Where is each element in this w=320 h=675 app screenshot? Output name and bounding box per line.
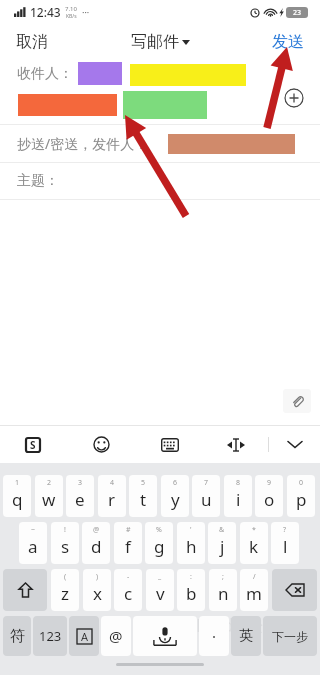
staticText: 发送 xyxy=(272,32,304,52)
button[interactable]: 7 xyxy=(192,475,220,517)
staticText: a xyxy=(28,535,38,558)
staticText: ··· xyxy=(82,6,90,18)
staticText: ! xyxy=(64,525,66,535)
staticText: z xyxy=(61,582,69,605)
staticText: v xyxy=(156,582,165,605)
button[interactable]: 添加联系人 xyxy=(284,88,304,108)
staticText: ~ xyxy=(31,525,36,535)
button[interactable]: 发送 xyxy=(262,28,314,56)
staticText: 8 xyxy=(236,478,241,488)
staticText: g xyxy=(154,535,165,558)
staticText: ) xyxy=(96,572,99,582)
staticText: c xyxy=(124,582,133,605)
button[interactable]: @ xyxy=(101,616,131,656)
staticText: · xyxy=(212,626,217,646)
staticText: ? xyxy=(283,525,287,535)
staticText: 英 xyxy=(239,627,253,645)
staticText: w xyxy=(42,488,56,511)
button[interactable]: 123 xyxy=(33,616,67,656)
button[interactable]: ' xyxy=(177,522,205,564)
staticText: 抄送/密送，发件人： xyxy=(17,134,149,153)
button[interactable]: : xyxy=(177,569,205,611)
button[interactable]: 符 xyxy=(3,616,31,656)
button[interactable]: # xyxy=(114,522,142,564)
staticText: 9 xyxy=(267,478,272,488)
button[interactable]: & xyxy=(208,522,236,564)
button[interactable]: 收件人： xyxy=(0,58,320,124)
button[interactable]: 空格 语音输入 xyxy=(133,616,197,656)
staticText: q xyxy=(12,488,23,511)
button[interactable]: 主题： xyxy=(0,163,320,199)
button[interactable]: ; xyxy=(209,569,237,611)
staticText: & xyxy=(219,525,225,535)
button[interactable]: 添加附件 xyxy=(283,389,311,413)
button[interactable]: - xyxy=(114,569,142,611)
button[interactable]: ) xyxy=(83,569,111,611)
button[interactable]: % xyxy=(145,522,173,564)
staticText: / xyxy=(253,572,256,582)
button[interactable]: 2 xyxy=(35,475,63,517)
staticText: r xyxy=(108,488,116,511)
staticText: m xyxy=(246,582,262,605)
button[interactable]: 抄送/密送，发件人： xyxy=(0,125,320,162)
staticText: e xyxy=(75,488,85,511)
button[interactable]: 收起键盘 xyxy=(282,433,308,456)
button[interactable]: 光标移动 xyxy=(223,433,249,456)
staticText: y xyxy=(171,488,180,511)
staticText: _ xyxy=(158,572,162,582)
staticText: 3 xyxy=(78,478,83,488)
staticText: KB/s xyxy=(66,13,77,20)
staticText: ' xyxy=(190,525,192,535)
button[interactable]: 8 xyxy=(224,475,252,517)
button[interactable]: 9 xyxy=(255,475,283,517)
button[interactable]: @ xyxy=(82,522,110,564)
button[interactable]: 5 xyxy=(129,475,157,517)
staticText: 5 xyxy=(141,478,146,488)
staticText: A xyxy=(81,629,89,644)
button[interactable]: 取消 xyxy=(6,28,58,56)
staticText: 123 xyxy=(39,627,62,645)
staticText: l xyxy=(283,535,288,558)
button[interactable]: 英 xyxy=(231,616,261,656)
button[interactable]: 键盘切换 xyxy=(157,433,183,456)
button[interactable]: 删除 xyxy=(272,569,317,611)
button[interactable]: ? xyxy=(271,522,299,564)
staticText: @ xyxy=(109,626,123,646)
staticText: 6 xyxy=(173,478,178,488)
button[interactable]: 字母切换 xyxy=(69,616,99,656)
staticText: u xyxy=(201,488,212,511)
staticText: 1 xyxy=(15,478,20,488)
button[interactable]: · xyxy=(199,616,229,656)
staticText: S xyxy=(30,438,36,452)
staticText: ( xyxy=(64,572,67,582)
staticText: 收件人： xyxy=(17,65,73,83)
staticText: * xyxy=(252,525,256,535)
button[interactable]: / xyxy=(240,569,268,611)
staticText: b xyxy=(186,582,197,605)
button[interactable]: 表情 xyxy=(88,433,114,456)
staticText: @ xyxy=(93,525,100,535)
staticText: t xyxy=(140,488,147,511)
button[interactable]: 0 xyxy=(287,475,315,517)
staticText: 2 xyxy=(47,478,52,488)
staticText: 23 xyxy=(293,8,302,18)
button[interactable]: 输入法 xyxy=(20,433,46,456)
button[interactable]: 3 xyxy=(66,475,94,517)
button[interactable]: ( xyxy=(51,569,79,611)
button[interactable]: ~ xyxy=(19,522,47,564)
button[interactable]: * xyxy=(240,522,268,564)
button[interactable]: 大写切换 xyxy=(3,569,47,611)
button[interactable]: _ xyxy=(146,569,174,611)
button[interactable]: ! xyxy=(51,522,79,564)
staticText: % xyxy=(156,525,162,535)
staticText: k xyxy=(249,535,259,558)
staticText: p xyxy=(296,488,307,511)
button[interactable]: 6 xyxy=(161,475,189,517)
button[interactable]: 写邮件 xyxy=(123,28,198,56)
button[interactable]: 4 xyxy=(98,475,126,517)
staticText: h xyxy=(186,535,197,558)
staticText: 7 xyxy=(204,478,209,488)
button[interactable]: 下一步 xyxy=(263,616,317,656)
button[interactable]: 1 xyxy=(3,475,31,517)
staticText: 符 xyxy=(10,627,25,646)
